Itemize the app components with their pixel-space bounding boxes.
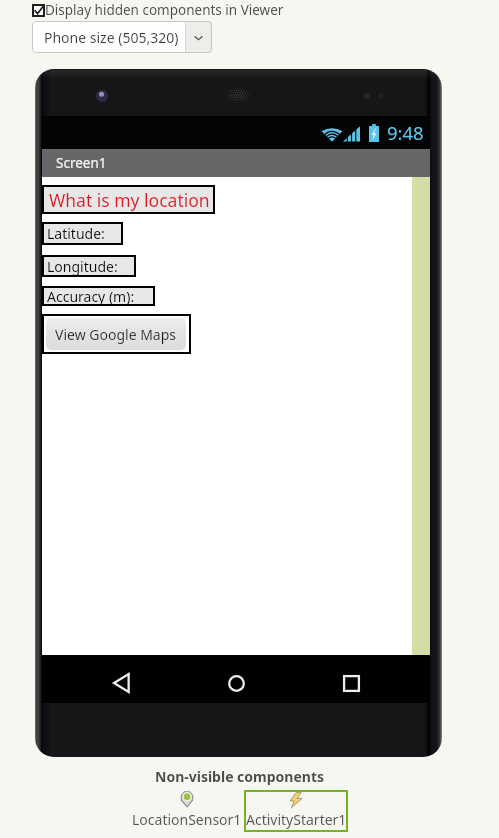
staticText: ActivityStarter1 (246, 810, 347, 829)
button[interactable]: Back (90, 655, 152, 703)
button[interactable]: View Google Maps (46, 318, 186, 350)
button[interactable]: Accuracy (m): (42, 286, 155, 306)
button[interactable]: Display hidden components in Viewer (32, 1, 284, 19)
staticText: Longitude: (47, 257, 118, 276)
button[interactable]: What is my location (42, 185, 215, 214)
button[interactable]: Phone size (505,320) (32, 21, 212, 53)
staticText: Accuracy (m): (47, 287, 135, 306)
button[interactable]: Longitude: (42, 255, 136, 277)
staticText: Display hidden components in Viewer (45, 1, 284, 19)
staticText: Latitude: (47, 224, 105, 243)
staticText: Non-visible components (155, 767, 325, 786)
button[interactable]: LocationSensor1 (131, 790, 242, 832)
button[interactable]: Latitude: (42, 222, 123, 245)
button[interactable]: Home (205, 655, 267, 703)
staticText: What is my location (49, 188, 210, 212)
button[interactable]: Recent apps (320, 655, 382, 703)
staticText: View Google Maps (55, 325, 177, 344)
staticText: Phone size (505,320) (44, 28, 179, 47)
button[interactable]: ActivityStarter1 (244, 790, 348, 832)
staticText: 9:48 (387, 120, 424, 145)
staticText: Screen1 (56, 154, 107, 172)
staticText: LocationSensor1 (132, 810, 242, 829)
